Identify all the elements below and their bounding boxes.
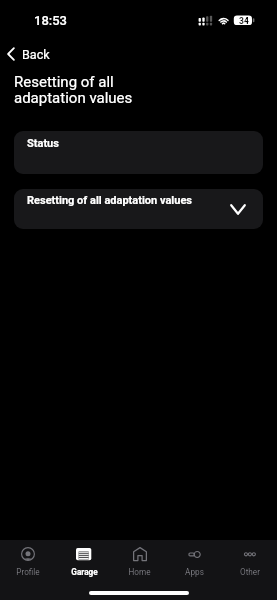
staticText: Resetting of all adaptation values (14, 73, 133, 107)
button[interactable]: Back (0, 43, 60, 65)
staticText: Profile (16, 567, 40, 577)
button[interactable]: Resetting of all adaptation values (14, 189, 263, 229)
staticText: Status (27, 137, 59, 150)
staticText: Apps (185, 567, 204, 577)
staticText: Home (128, 567, 151, 577)
button[interactable]: Home (112, 540, 167, 600)
staticText: Resetting of all adaptation values (27, 194, 192, 207)
button[interactable]: Profile (0, 540, 56, 600)
button[interactable]: Status (14, 131, 263, 174)
staticText: 34 (239, 16, 249, 26)
button[interactable]: Apps (167, 540, 222, 600)
staticText: Other (240, 567, 260, 577)
button[interactable]: Garage (56, 540, 112, 600)
staticText: Back (22, 47, 50, 62)
staticText: 18:53 (34, 13, 67, 28)
button[interactable]: Other (222, 540, 277, 600)
staticText: Garage (71, 567, 98, 577)
